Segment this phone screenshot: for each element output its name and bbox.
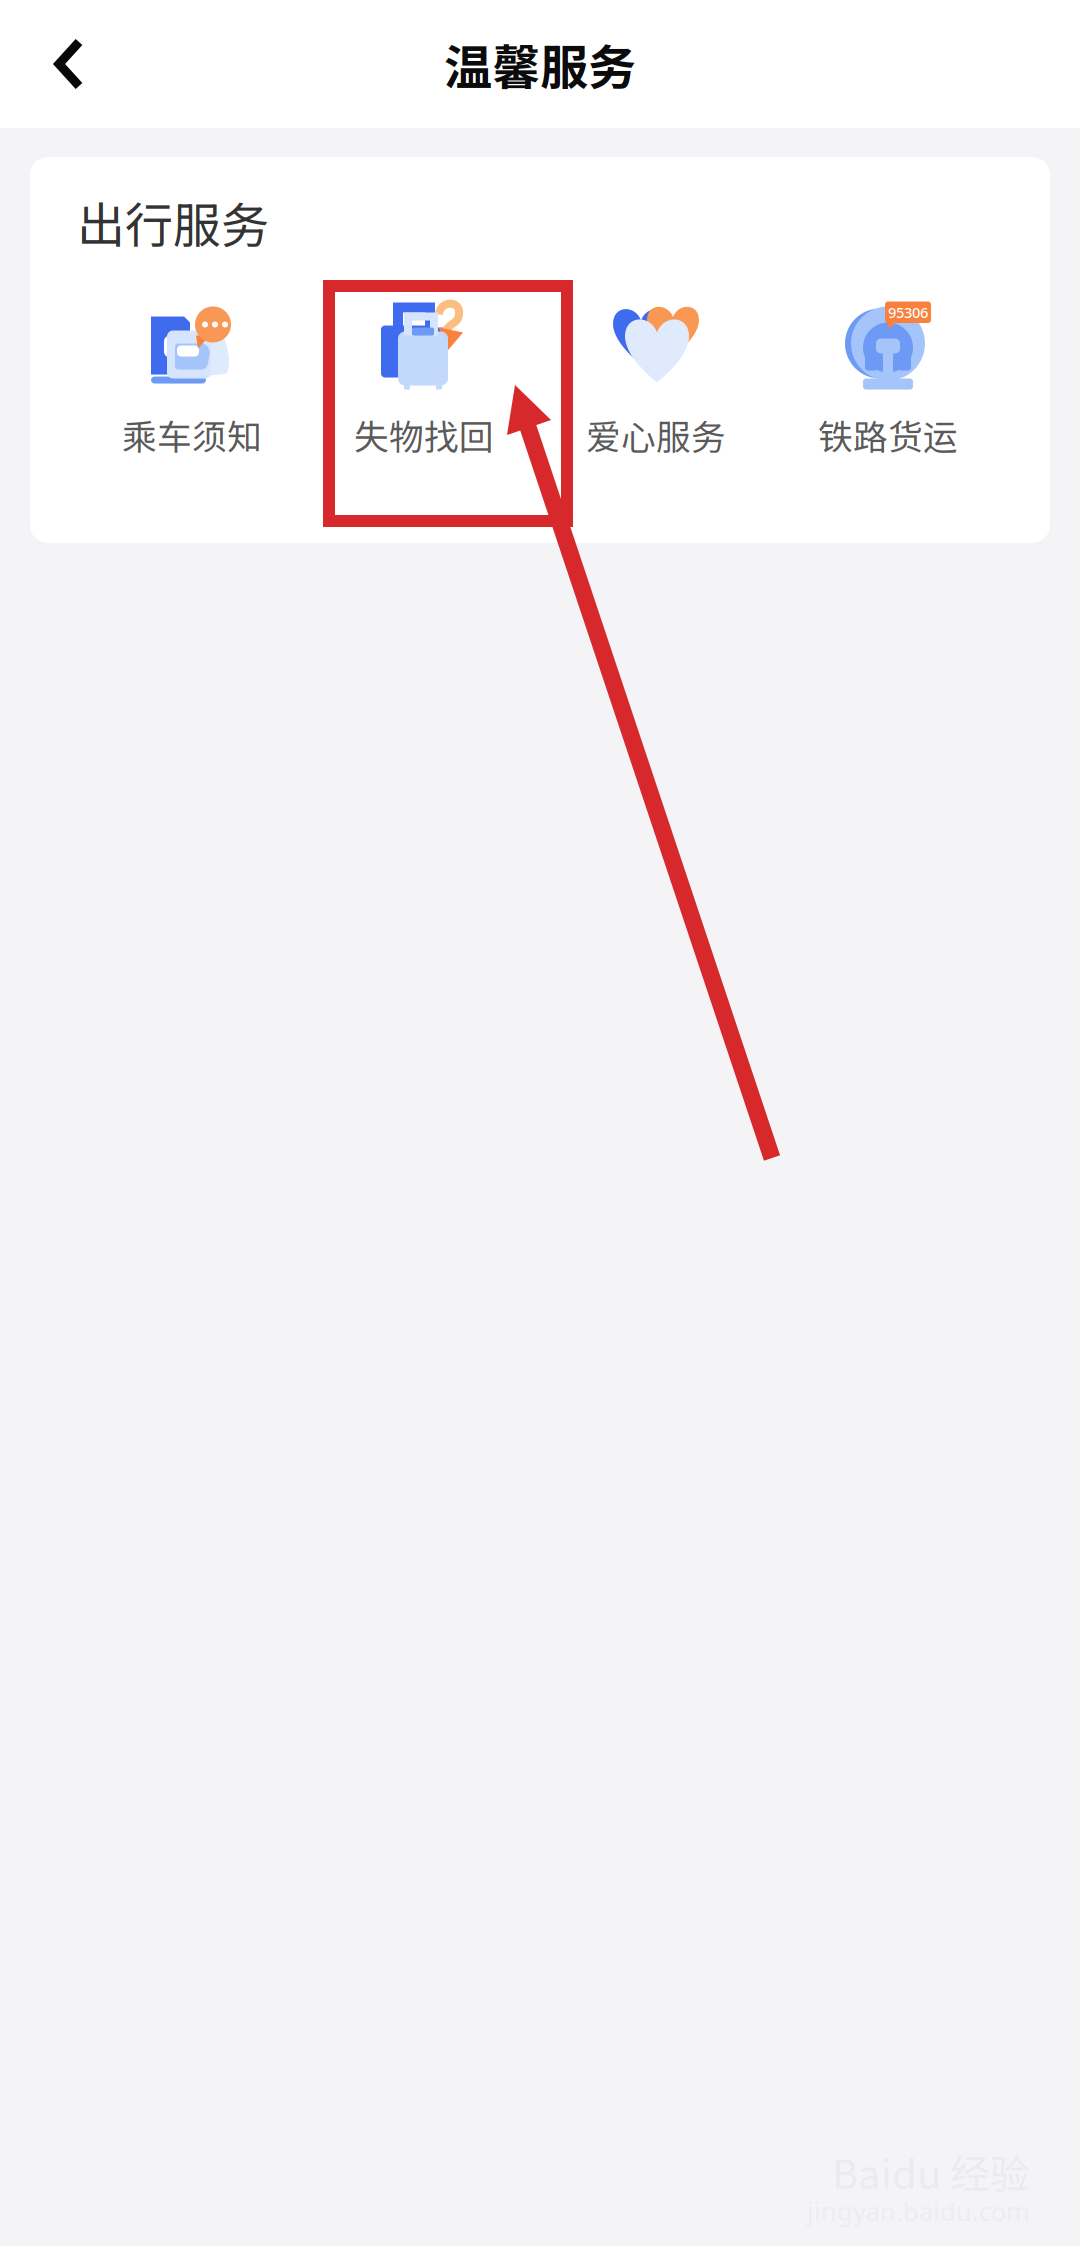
staticText: 乘车须知	[122, 409, 262, 460]
staticText: 温馨服务	[444, 29, 636, 99]
staticText: 出行服务	[77, 187, 269, 256]
staticText: 铁路货运	[818, 409, 958, 460]
button[interactable]: 爱心服务	[540, 303, 772, 460]
staticText: 爱心服务	[586, 409, 726, 460]
button[interactable]: 95306	[772, 303, 1004, 460]
button[interactable]: 失物找回	[308, 303, 540, 460]
staticText: 95306	[888, 302, 928, 322]
button[interactable]: Back	[0, 19, 138, 109]
staticText: 失物找回	[354, 409, 494, 460]
button[interactable]: 乘车须知	[76, 303, 308, 460]
staticText: Baidu 经验	[832, 2142, 1030, 2200]
